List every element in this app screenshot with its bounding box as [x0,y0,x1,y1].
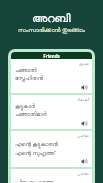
button[interactable]: صاحبي [11,169,92,183]
staticText: صاحبي [15,171,89,176]
staticText: أصدقاء [15,97,89,102]
staticText: കൂട്ടുകാർ [15,104,35,110]
button[interactable]: صاحبي [11,131,92,167]
button[interactable]: Play pronunciation [80,119,89,128]
staticText: ചങ്ങാതി [15,68,37,74]
staticText: പ്രിയ സുഹൃത്തേ [15,178,54,182]
button[interactable]: صديق [11,59,92,93]
staticText: Friends [43,53,60,59]
staticText: സംസാരിക്കാൻ തുടങ്ങാം [0,26,103,34]
button[interactable]: Play pronunciation [80,83,89,92]
button[interactable]: Friends [11,52,92,59]
staticText: صديق [15,61,89,66]
staticText: എന്റെ സുഹൃത്ത് [15,149,56,156]
staticText: ചങ്ങാതിമാർ [15,112,47,118]
staticText: സ്നേഹിതൻ [15,76,43,82]
button[interactable]: أصدقاء [11,95,92,129]
staticText: എന്റെ കൂട്ടുകാരൻ [15,140,58,147]
staticText: അറബി [0,13,103,24]
staticText: صاحبي [15,133,89,138]
button[interactable]: Play pronunciation [80,157,89,166]
